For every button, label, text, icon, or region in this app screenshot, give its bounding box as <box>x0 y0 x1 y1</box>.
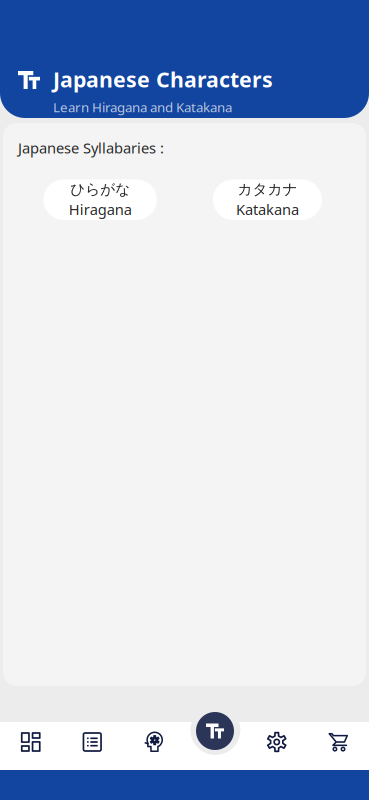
staticText: カタカナ <box>237 180 297 198</box>
staticText: Katakana <box>236 199 299 219</box>
staticText: Hiragana <box>69 199 132 219</box>
button[interactable]: Practice <box>123 722 184 770</box>
staticText: ひらがな <box>70 180 130 198</box>
button[interactable]: Lists <box>61 722 123 770</box>
button[interactable]: Settings <box>246 722 307 770</box>
staticText: Japanese Characters <box>53 65 273 93</box>
staticText: Japanese Syllabaries : <box>18 138 164 157</box>
button[interactable]: Dashboard <box>0 722 61 770</box>
button[interactable]: Store <box>307 722 369 770</box>
button[interactable]: カタカナ <box>213 179 322 220</box>
button[interactable]: Text size <box>196 712 234 750</box>
button[interactable]: ひらがな <box>43 179 157 220</box>
staticText: Learn Hiragana and Katakana <box>53 98 232 116</box>
